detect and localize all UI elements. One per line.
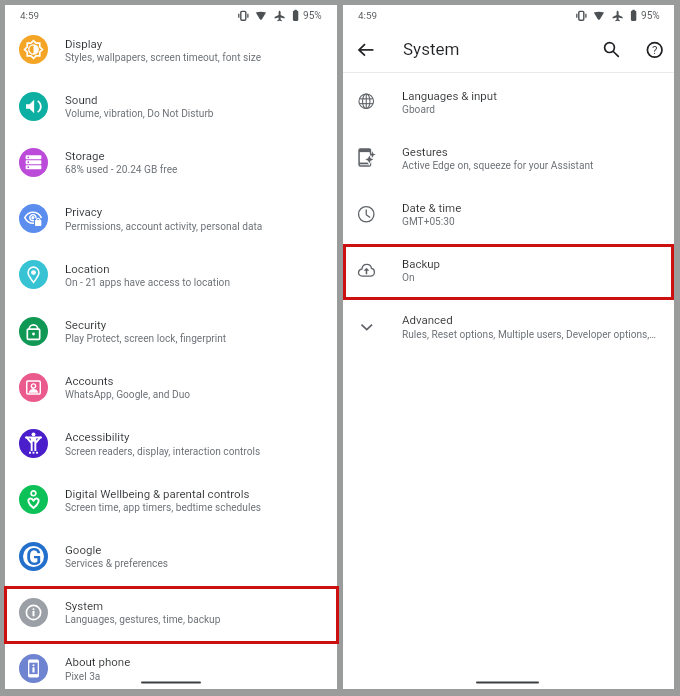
staticText: 4:59	[358, 10, 378, 22]
button[interactable]: Backup	[343, 242, 674, 298]
staticText: Screen time, app timers, bedtime schedul…	[65, 502, 262, 514]
staticText: System	[403, 39, 460, 59]
staticText: Pixel 3a	[65, 671, 101, 683]
staticText: Advanced	[402, 313, 453, 326]
staticText: Display	[65, 37, 103, 50]
button[interactable]: Accounts	[5, 359, 337, 415]
staticText: About phone	[65, 655, 131, 668]
staticText: G	[26, 544, 42, 571]
staticText: Storage	[65, 149, 105, 162]
staticText: System	[65, 599, 104, 612]
staticText: Security	[65, 318, 107, 331]
staticText: ?	[652, 43, 658, 56]
staticText: Languages, gestures, time, backup	[65, 614, 221, 626]
staticText: Sound	[65, 93, 98, 106]
staticText: WhatsApp, Google, and Duo	[65, 389, 191, 401]
button[interactable]: Location	[5, 247, 337, 303]
staticText: Google	[65, 543, 102, 556]
button[interactable]: Advanced	[343, 298, 674, 354]
staticText: Privacy	[65, 205, 103, 218]
button[interactable]: Storage	[5, 134, 337, 190]
staticText: 95%	[641, 10, 660, 22]
button[interactable]: Back	[350, 34, 382, 66]
staticText: Styles, wallpapers, screen timeout, font…	[65, 52, 262, 64]
button[interactable]: System	[5, 584, 337, 640]
staticText: Permissions, account activity, personal …	[65, 221, 263, 233]
staticText: Digital Wellbeing & parental controls	[65, 487, 250, 500]
staticText: Services & preferences	[65, 558, 168, 570]
button[interactable]: Digital Wellbeing & parental controls	[5, 472, 337, 528]
button[interactable]: Date & time	[343, 186, 674, 242]
button[interactable]: Display	[5, 22, 337, 78]
staticText: 95%	[303, 10, 322, 22]
button[interactable]: Gestures	[343, 130, 674, 186]
staticText: GMT+05:30	[402, 216, 455, 228]
staticText: Active Edge on, squeeze for your Assista…	[402, 160, 594, 172]
staticText: 68% used - 20.24 GB free	[65, 164, 178, 176]
staticText: Gboard	[402, 104, 435, 116]
staticText: Date & time	[402, 201, 462, 214]
staticText: Gestures	[402, 145, 448, 158]
button[interactable]: Help	[637, 34, 669, 66]
button[interactable]: Languages & input	[343, 74, 674, 130]
staticText: On - 21 apps have access to location	[65, 277, 230, 289]
staticText: On	[402, 272, 415, 284]
staticText: Screen readers, display, interaction con…	[65, 446, 261, 458]
staticText: Play Protect, screen lock, fingerprint	[65, 333, 227, 345]
staticText: Location	[65, 262, 110, 275]
button[interactable]: Security	[5, 303, 337, 359]
staticText: Languages & input	[402, 89, 497, 102]
staticText: Accessibility	[65, 430, 130, 443]
button[interactable]: Privacy	[5, 190, 337, 246]
staticText: Backup	[402, 257, 441, 270]
staticText: 4:59	[20, 10, 40, 22]
staticText: Rules, Reset options, Multiple users, De…	[402, 329, 657, 341]
staticText: Accounts	[65, 374, 114, 387]
button[interactable]: About phone	[5, 640, 337, 689]
button[interactable]: Sound	[5, 78, 337, 134]
button[interactable]: Google	[5, 528, 337, 584]
staticText: Volume, vibration, Do Not Disturb	[65, 108, 214, 120]
button[interactable]: Search	[596, 34, 628, 66]
button[interactable]: Accessibility	[5, 415, 337, 471]
